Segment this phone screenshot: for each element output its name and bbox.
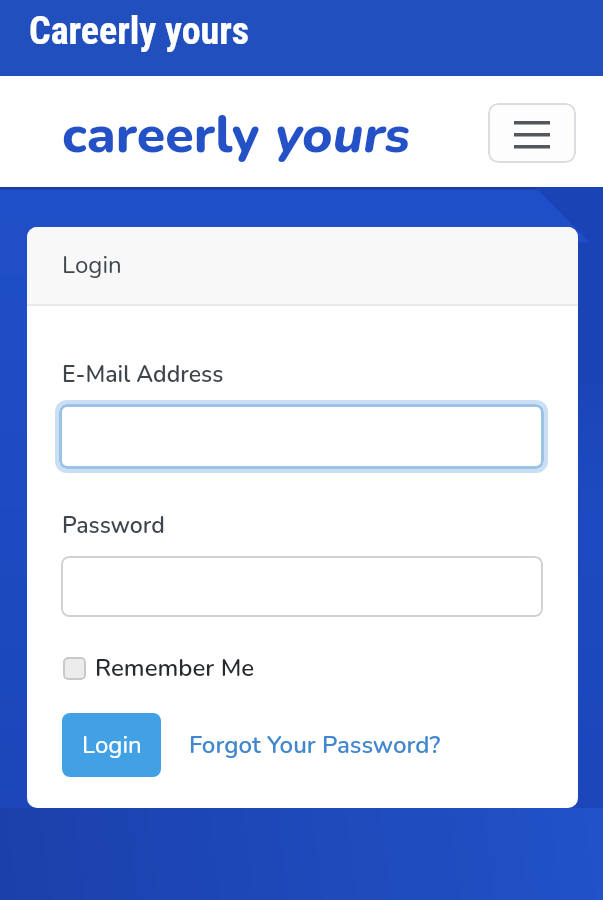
button[interactable]: Login: [62, 713, 161, 777]
staticText: Remember Me: [95, 652, 255, 685]
staticText: Login: [82, 729, 142, 762]
staticText: E-Mail Address: [62, 359, 224, 387]
button[interactable]: [61, 556, 543, 617]
staticText: yours: [275, 99, 411, 170]
staticText: Forgot Your Password?: [189, 729, 441, 762]
staticText: careerly: [62, 99, 275, 170]
staticText: Password: [62, 510, 165, 538]
staticText: Careerly yours: [29, 9, 250, 54]
button[interactable]: Remember Me: [63, 650, 323, 686]
button[interactable]: [488, 103, 576, 163]
button[interactable]: Forgot Your Password?: [189, 727, 459, 763]
button[interactable]: [59, 404, 544, 469]
staticText: Login: [62, 249, 122, 282]
